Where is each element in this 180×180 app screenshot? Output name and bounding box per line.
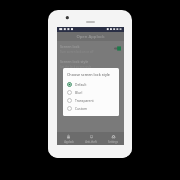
button[interactable]: Screen lock [57, 41, 124, 56]
button[interactable]: Custom [67, 104, 115, 112]
button[interactable]: Blurl [67, 88, 115, 96]
button[interactable]: Applock [57, 132, 80, 145]
staticText: Settings [108, 140, 118, 144]
button[interactable]: Anti-theft [80, 132, 102, 145]
button[interactable]: Transparent [67, 96, 115, 104]
staticText: Set the lock screen style [60, 65, 92, 69]
button[interactable]: Screen lock toggle [114, 46, 121, 51]
button[interactable]: Screen lock style [57, 56, 124, 71]
staticText: Choose screen lock style [67, 72, 110, 77]
staticText: Blurl [75, 90, 83, 94]
staticText: Screen lock style [60, 59, 89, 64]
staticText: Applock [64, 140, 74, 144]
staticText: Open Applock [76, 34, 105, 40]
staticText: Transparent [75, 98, 94, 102]
staticText: Screen lock [60, 44, 80, 49]
staticText: Custom [75, 106, 87, 110]
button[interactable]: Settings [102, 132, 124, 145]
staticText: Anti-theft [85, 140, 97, 144]
staticText: Default [75, 82, 87, 86]
button[interactable]: Default [67, 80, 115, 88]
button[interactable]: Open Applock [57, 32, 124, 41]
